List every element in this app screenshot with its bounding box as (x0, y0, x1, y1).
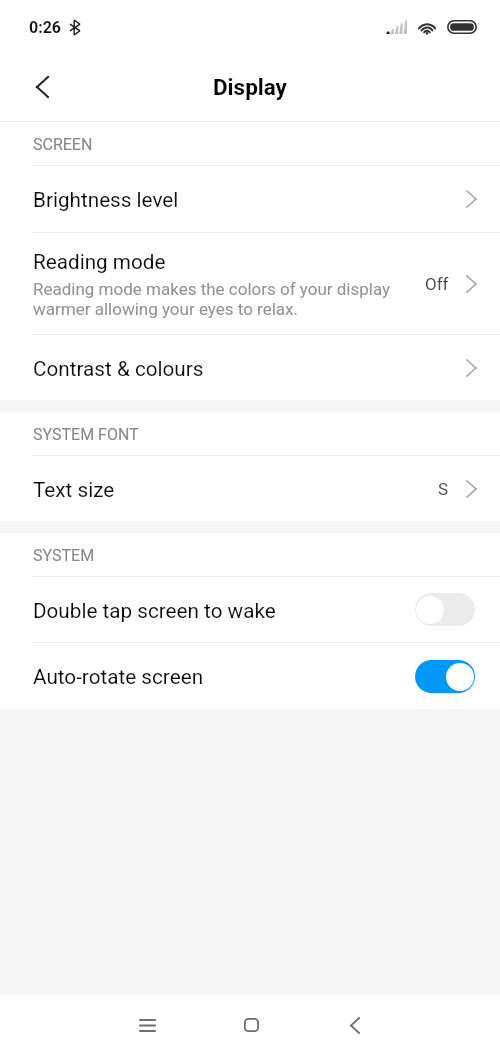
staticText: Off (425, 274, 449, 294)
button[interactable]: Reading mode (0, 233, 500, 334)
staticText: Text size (33, 478, 115, 502)
staticText: Reading mode (33, 250, 166, 274)
button[interactable]: Home (219, 995, 283, 1055)
staticText: Display (213, 74, 287, 100)
button[interactable]: On (415, 660, 475, 693)
staticText: SCREEN (33, 135, 93, 154)
button[interactable]: Back (323, 995, 387, 1055)
staticText: Auto-rotate screen (33, 665, 204, 689)
button[interactable]: Off (415, 593, 475, 626)
staticText: Reading mode makes the colors of your di… (33, 279, 391, 319)
staticText: 0:26 (29, 18, 62, 37)
button[interactable]: Text size (0, 456, 500, 521)
button[interactable]: Auto-rotate screen (0, 643, 500, 709)
button[interactable]: Contrast & colours (0, 335, 500, 400)
staticText: S (438, 479, 449, 499)
staticText: SYSTEM (33, 546, 95, 565)
staticText: Double tap screen to wake (33, 599, 276, 623)
staticText: SYSTEM FONT (33, 425, 139, 444)
button[interactable]: Back (0, 55, 58, 121)
staticText: Brightness level (33, 188, 179, 212)
button[interactable]: Recent apps (115, 995, 179, 1055)
staticText: Contrast & colours (33, 357, 204, 381)
button[interactable]: Brightness level (0, 166, 500, 232)
button[interactable]: Double tap screen to wake (0, 577, 500, 642)
